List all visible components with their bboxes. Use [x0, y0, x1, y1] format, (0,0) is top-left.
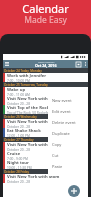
staticText: Made Easy [0, 14, 91, 26]
staticText: October 28 Friday [4, 170, 30, 174]
button[interactable]: Today [74, 60, 82, 68]
staticText: Night tour [7, 160, 29, 166]
staticText: Today Monday [38, 60, 55, 63]
staticText: October 20 - 28 [7, 148, 30, 151]
staticText: 10:00 - 11:30 PM [7, 166, 32, 169]
staticText: 7:00 - 11:00 AM [7, 93, 30, 96]
button[interactable]: Menu [3, 60, 11, 68]
staticText: October 27 Thursday [4, 138, 34, 142]
button[interactable]: Cut [48, 150, 88, 161]
staticText: October 25 Tomorrow, Tuesday [4, 83, 48, 87]
staticText: Calendar Scheduling [0, 1, 91, 16]
staticText: Duplicate [52, 131, 70, 136]
staticText: Edit event [52, 109, 71, 114]
button[interactable]: Visit New York with Mom [3, 96, 88, 105]
staticText: Eat Shake Shack [7, 128, 41, 134]
staticText: Delete event [52, 120, 76, 125]
staticText: New event [52, 98, 72, 103]
button[interactable]: Add event [68, 185, 80, 197]
staticText: Work with Jennifer [7, 73, 47, 79]
staticText: Cut [52, 153, 59, 158]
button[interactable]: More options [82, 61, 88, 67]
staticText: October 20 - 28 [7, 180, 30, 183]
button[interactable]: Cruise [3, 151, 88, 160]
staticText: Copy [52, 142, 62, 147]
button[interactable]: Visit Top of the Rock [3, 105, 88, 114]
staticText: Visit New York with Mom [7, 119, 60, 125]
button[interactable]: Duplicate [48, 128, 88, 139]
staticText: October 20 - 28 [7, 125, 30, 128]
button[interactable]: Edit event [48, 106, 88, 117]
button[interactable]: Work with Jennifer [3, 73, 88, 82]
staticText: Cruise [7, 151, 21, 157]
button[interactable]: Visit New York with Mom [3, 119, 88, 128]
staticText: Paste [52, 164, 63, 169]
staticText: Oct 24, 2016 [35, 63, 57, 68]
button[interactable]: Eat Shake Shack [3, 128, 88, 137]
staticText: Visit Top of the Rock [7, 105, 50, 111]
staticText: October 26 Wednesday [4, 115, 37, 119]
staticText: Wake up [7, 87, 26, 93]
button[interactable]: Wake up [3, 87, 88, 96]
staticText: October 20 - 28 [7, 102, 30, 105]
button[interactable]: New event [48, 95, 88, 106]
staticText: 7:00 - 9:00 PM [7, 157, 28, 160]
staticText: 12:00 - 1:00 PM [7, 134, 30, 137]
button[interactable]: Paste [48, 161, 88, 172]
staticText: Visit New York with Mom [7, 142, 60, 148]
staticText: Top of The Rock, 50 Rockefeller [7, 111, 54, 114]
button[interactable]: Visit New York with Mom [3, 174, 88, 183]
button[interactable]: Night tour [3, 160, 88, 169]
button[interactable]: Delete event [48, 117, 88, 128]
staticText: October 24 Today, Monday [4, 69, 42, 73]
staticText: Visit New York with Mom [7, 174, 60, 180]
staticText: Visit New York with Mom [7, 96, 60, 102]
button[interactable]: Visit New York with Mom [3, 142, 88, 151]
button[interactable]: Copy [48, 139, 88, 150]
staticText: 7:00 - 10:00 PM [7, 79, 30, 82]
